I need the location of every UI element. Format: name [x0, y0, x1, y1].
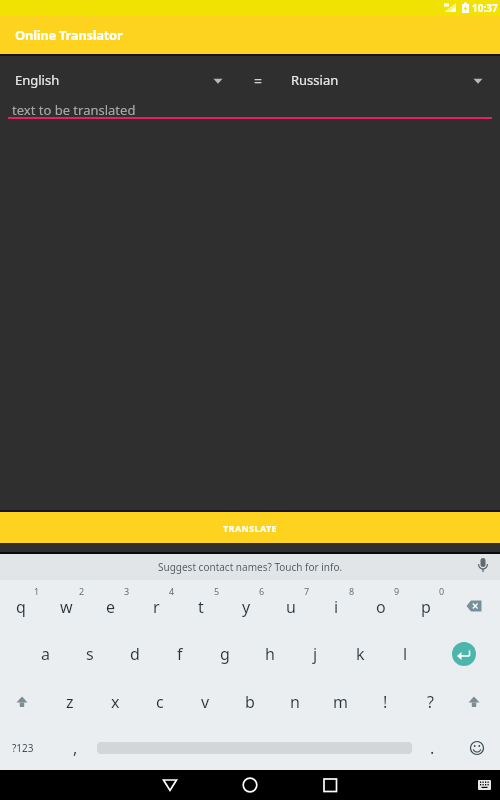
staticText: b [245, 691, 255, 713]
button[interactable] [0, 554, 460, 580]
button[interactable]: z [48, 678, 92, 725]
button[interactable]: j [293, 630, 337, 678]
staticText: TRANSLATE [223, 522, 278, 534]
staticText: z [66, 691, 74, 713]
staticText: l [403, 643, 408, 665]
staticText: v [201, 691, 210, 713]
staticText: Suggest contact names? Touch for info. [158, 560, 343, 574]
staticText: English [15, 71, 60, 89]
button[interactable] [462, 554, 500, 580]
button[interactable]: h [248, 630, 292, 678]
staticText: 2 [79, 585, 85, 597]
button[interactable] [452, 678, 496, 725]
staticText: k [356, 643, 365, 665]
button[interactable]: b [228, 678, 272, 725]
button[interactable]: c [138, 678, 182, 725]
button[interactable]: d [113, 630, 157, 678]
staticText: g [220, 643, 230, 665]
staticText: r [153, 596, 160, 618]
staticText: 0 [439, 585, 445, 597]
button[interactable]: i [314, 583, 358, 630]
staticText: 1 [34, 585, 40, 597]
button[interactable]: r [134, 583, 178, 630]
button[interactable]: m [318, 678, 362, 725]
staticText: Online Translator [15, 26, 123, 44]
button[interactable]: ! [363, 678, 407, 725]
staticText: q [16, 596, 26, 618]
staticText: u [286, 596, 296, 618]
button[interactable]: k [338, 630, 382, 678]
button[interactable] [0, 725, 46, 771]
button[interactable] [0, 678, 44, 725]
staticText: . [430, 737, 435, 759]
staticText: p [421, 596, 431, 618]
button[interactable]: f [158, 630, 202, 678]
button[interactable]: v [183, 678, 227, 725]
staticText: ! [383, 691, 388, 713]
button[interactable]: g [203, 630, 247, 678]
staticText: 4 [169, 585, 175, 597]
button[interactable] [452, 642, 476, 666]
button[interactable]: o [359, 583, 403, 630]
button[interactable]: q [0, 583, 43, 630]
button[interactable]: t [179, 583, 223, 630]
button[interactable]: a [23, 630, 67, 678]
staticText: 6 [259, 585, 265, 597]
staticText: x [111, 691, 120, 713]
button[interactable]: y [224, 583, 268, 630]
button[interactable] [310, 770, 350, 800]
button[interactable] [0, 98, 500, 122]
button[interactable]: , [53, 725, 97, 771]
button[interactable]: w [44, 583, 88, 630]
button[interactable] [260, 60, 500, 100]
button[interactable]: x [93, 678, 137, 725]
button[interactable] [470, 770, 500, 800]
staticText: e [106, 596, 116, 618]
staticText: , [73, 737, 78, 759]
staticText: w [60, 596, 73, 618]
button[interactable]: TRANSLATE [0, 512, 500, 543]
button[interactable]: s [68, 630, 112, 678]
staticText: 5 [214, 585, 220, 597]
button[interactable]: l [383, 630, 427, 678]
button[interactable]: English [0, 60, 240, 100]
staticText: Russian [291, 71, 339, 89]
staticText: = [254, 71, 263, 90]
button[interactable] [230, 770, 270, 800]
staticText: s [86, 643, 94, 665]
staticText: 3 [124, 585, 130, 597]
staticText: n [290, 691, 300, 713]
staticText: 8 [349, 585, 355, 597]
staticText: ? [427, 691, 434, 713]
staticText: text to be translated [12, 101, 136, 119]
staticText: 9 [394, 585, 400, 597]
staticText: y [242, 596, 251, 618]
button[interactable] [455, 725, 500, 771]
button[interactable] [452, 583, 496, 630]
staticText: f [177, 643, 183, 665]
button[interactable]: n [273, 678, 317, 725]
staticText: c [156, 691, 164, 713]
button[interactable]: e [89, 583, 133, 630]
button[interactable]: u [269, 583, 313, 630]
staticText: t [198, 596, 204, 618]
staticText: i [334, 596, 339, 618]
staticText: d [130, 643, 140, 665]
button[interactable]: p [404, 583, 448, 630]
button[interactable] [150, 770, 190, 800]
staticText: a [41, 643, 50, 665]
staticText: m [333, 691, 348, 713]
staticText: o [376, 596, 386, 618]
staticText: 10:37 [472, 1, 498, 15]
staticText: 7 [304, 585, 310, 597]
staticText: j [313, 643, 318, 665]
button[interactable]: ? [408, 678, 452, 725]
button[interactable]: . [410, 725, 454, 771]
staticText: h [265, 643, 275, 665]
staticText: ?123 [12, 741, 34, 755]
